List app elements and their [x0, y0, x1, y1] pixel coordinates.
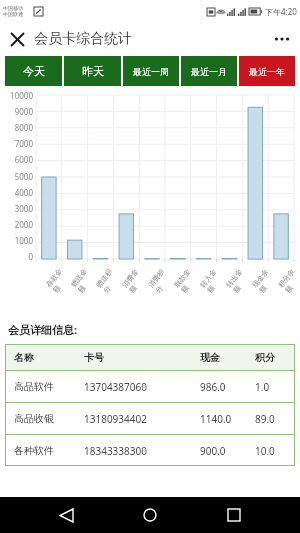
staticText: 各种软件	[14, 444, 54, 457]
staticText: 2000	[14, 219, 33, 230]
staticText: 卡号	[84, 351, 104, 364]
staticText: 8000	[14, 122, 33, 133]
button[interactable]: Recent apps	[216, 497, 252, 533]
staticText: 13180934402	[84, 412, 147, 426]
staticText: 高品收银	[14, 412, 54, 425]
staticText: 900.0	[200, 444, 226, 458]
staticText: 5000	[14, 171, 33, 182]
staticText: 转入金额	[198, 263, 216, 295]
staticText: 今天	[23, 64, 45, 78]
staticText: 中国联通	[3, 11, 23, 17]
staticText: 会员卡综合统计	[34, 30, 132, 48]
staticText: 最近一月	[191, 66, 227, 77]
staticText: 9000	[14, 106, 33, 117]
staticText: 10000	[10, 90, 33, 101]
staticText: 转出金额	[224, 263, 242, 295]
button[interactable]: Back	[48, 497, 84, 533]
staticText: 18343338300	[84, 444, 147, 458]
staticText: 会员详细信息:	[8, 322, 78, 337]
staticText: 13704387060	[84, 380, 147, 394]
staticText: 6000	[14, 154, 33, 165]
staticText: 1000	[14, 235, 33, 246]
staticText: 赠送积分	[94, 263, 112, 295]
staticText: 取款金额	[172, 263, 190, 295]
staticText: 1140.0	[200, 412, 232, 426]
staticText: 积分	[255, 351, 275, 364]
button[interactable]: Home	[132, 497, 168, 533]
button[interactable]: 今天	[5, 56, 62, 86]
staticText: 最近一周	[133, 66, 169, 77]
staticText: 积分余额	[276, 263, 294, 295]
staticText: 昨天	[82, 64, 104, 78]
button[interactable]: 高品收银	[5, 403, 295, 434]
button[interactable]: 最近一月	[181, 56, 237, 86]
staticText: 3000	[14, 203, 33, 214]
staticText: 高品软件	[14, 380, 54, 393]
button[interactable]: More options	[268, 25, 296, 53]
staticText: 消费金额	[120, 263, 138, 295]
staticText: 下午4:20	[265, 6, 297, 17]
staticText: 7000	[14, 138, 33, 149]
staticText: 4000	[14, 187, 33, 198]
staticText: 存款金额	[44, 264, 61, 294]
staticText: 89.0	[255, 412, 275, 426]
staticText: 0	[28, 251, 33, 262]
staticText: 10.0	[255, 444, 275, 458]
button[interactable]: 最近一周	[123, 56, 179, 86]
button[interactable]: 昨天	[64, 56, 121, 86]
staticText: 1.0	[255, 380, 270, 394]
staticText: 名称	[14, 351, 34, 364]
button[interactable]: 各种软件	[5, 435, 295, 466]
button[interactable]: Close	[4, 26, 30, 52]
staticText: 现金余额	[250, 263, 268, 295]
staticText: 现金	[200, 351, 220, 364]
button[interactable]: 高品软件	[5, 371, 295, 402]
staticText: 最近一年	[249, 66, 285, 77]
staticText: 赠送金额	[69, 264, 86, 294]
staticText: 消费积分	[146, 263, 164, 295]
staticText: 中国移动	[3, 5, 23, 11]
staticText: 986.0	[200, 380, 226, 394]
button[interactable]: 最近一年	[239, 56, 295, 86]
